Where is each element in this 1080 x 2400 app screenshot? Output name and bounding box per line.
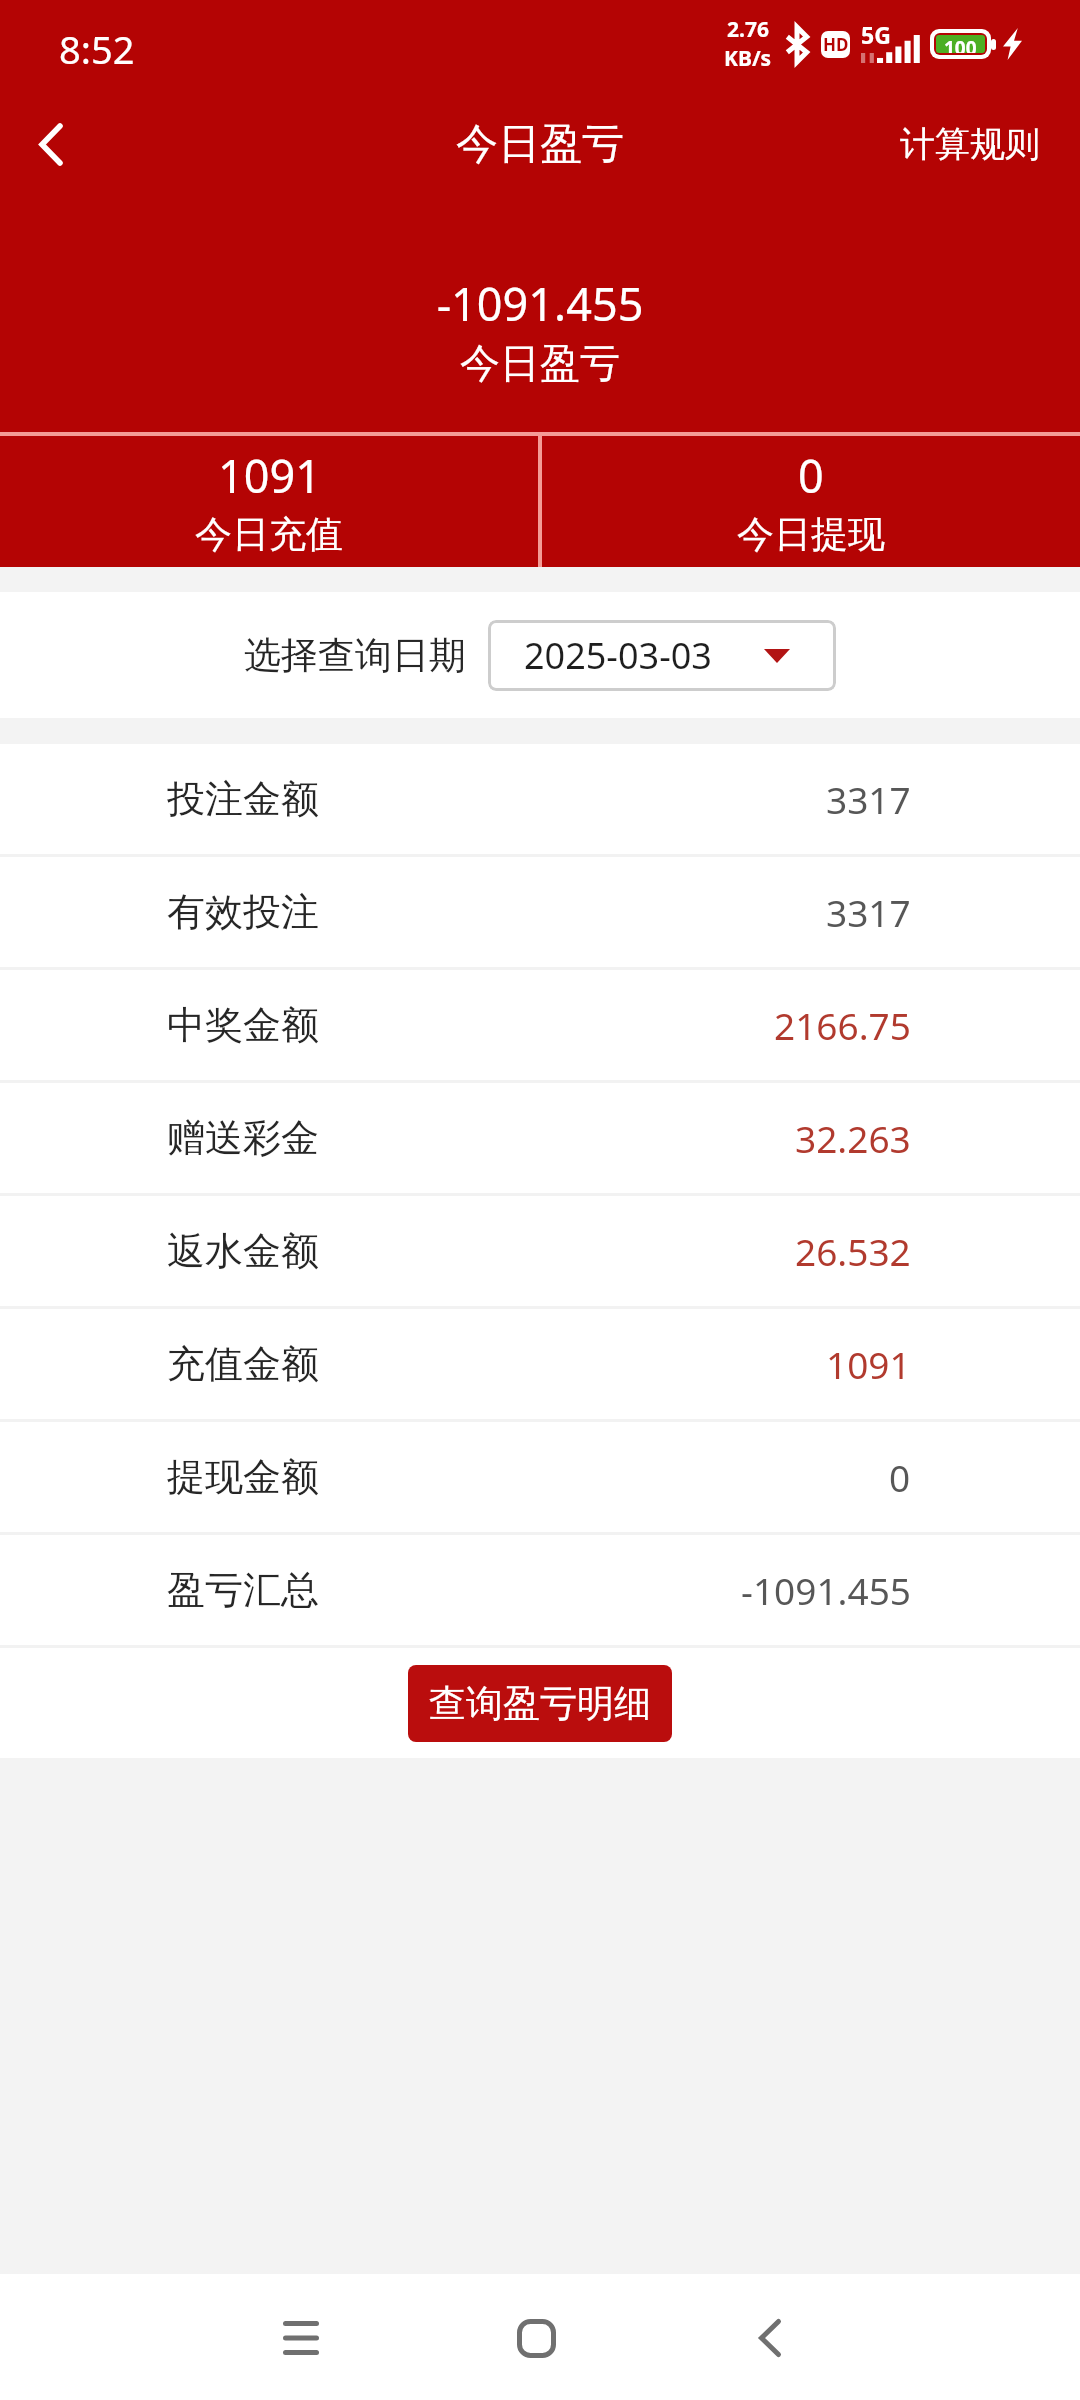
button[interactable]: 查询盈亏明细 — [408, 1665, 672, 1742]
button[interactable]: Home — [476, 2278, 596, 2398]
staticText: -1091.455 — [741, 1565, 911, 1615]
staticText: 返水金额 — [167, 1227, 319, 1275]
button[interactable]: 提现金额 — [0, 1422, 1080, 1532]
staticText: 2166.75 — [774, 1000, 911, 1050]
button[interactable]: Back — [0, 88, 108, 200]
button[interactable]: 1091 — [0, 436, 538, 567]
staticText: 今日盈亏 — [456, 118, 624, 171]
staticText: 有效投注 — [167, 888, 319, 936]
staticText: 2025-03-03 — [524, 631, 712, 680]
staticText: 提现金额 — [167, 1453, 319, 1501]
button[interactable]: 中奖金额 — [0, 970, 1080, 1080]
staticText: 1091 — [218, 445, 321, 506]
staticText: 32.263 — [795, 1113, 911, 1163]
staticText: -1091.455 — [0, 273, 1080, 334]
staticText: 查询盈亏明细 — [429, 1680, 651, 1727]
staticText: 今日盈亏 — [0, 338, 1080, 388]
button[interactable]: 2025-03-03 — [488, 620, 836, 691]
staticText: 选择查询日期 — [244, 632, 466, 679]
button[interactable]: 返水金额 — [0, 1196, 1080, 1306]
staticText: 3317 — [826, 774, 911, 824]
button[interactable]: 充值金额 — [0, 1309, 1080, 1419]
staticText: 26.532 — [795, 1226, 911, 1276]
staticText: KB/s — [724, 44, 772, 73]
staticText: 8:52 — [59, 23, 135, 75]
button[interactable]: 赠送彩金 — [0, 1083, 1080, 1193]
staticText: 赠送彩金 — [167, 1114, 319, 1162]
staticText: 3317 — [826, 887, 911, 937]
staticText: 今日充值 — [195, 511, 343, 558]
staticText: 0 — [889, 1452, 911, 1502]
staticText: 中奖金额 — [167, 1001, 319, 1049]
button[interactable]: Back — [710, 2278, 830, 2398]
staticText: 投注金额 — [167, 775, 319, 823]
staticText: 5G — [861, 19, 891, 50]
button[interactable]: Recents — [241, 2278, 361, 2398]
staticText: 盈亏汇总 — [167, 1566, 319, 1614]
button[interactable]: 投注金额 — [0, 744, 1080, 854]
staticText: 0 — [798, 445, 824, 506]
staticText: 100 — [944, 35, 977, 53]
staticText: 2.76 — [727, 15, 769, 44]
staticText: 1091 — [826, 1339, 911, 1389]
button[interactable]: 有效投注 — [0, 857, 1080, 967]
staticText: HD — [823, 33, 849, 56]
staticText: 充值金额 — [167, 1340, 319, 1388]
button[interactable]: 盈亏汇总 — [0, 1535, 1080, 1645]
button[interactable]: 计算规则 — [900, 88, 1080, 200]
button[interactable]: 0 — [542, 436, 1080, 567]
staticText: 计算规则 — [900, 122, 1040, 166]
staticText: 今日提现 — [737, 511, 885, 558]
